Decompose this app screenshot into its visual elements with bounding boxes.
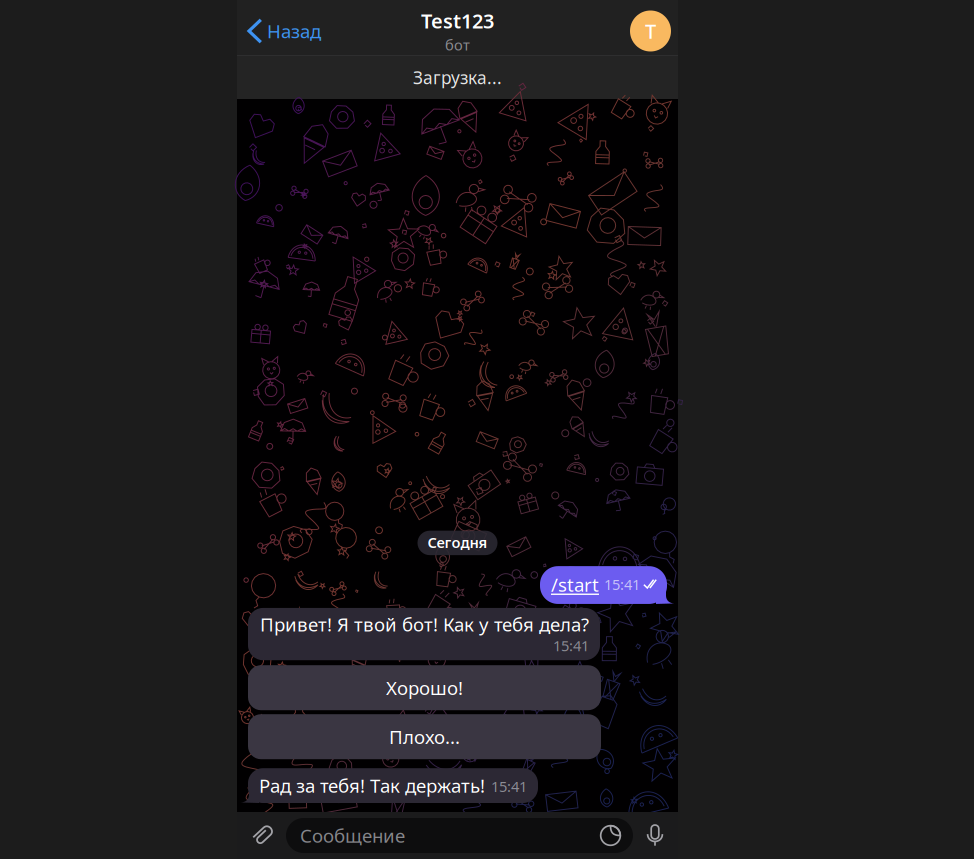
button[interactable]: Attach file: [237, 815, 286, 856]
button[interactable]: Record voice message: [633, 814, 678, 856]
staticText: Test123: [421, 7, 494, 34]
staticText: бот: [445, 35, 470, 54]
button[interactable]: Назад: [237, 6, 321, 50]
staticText: T: [645, 18, 656, 44]
staticText: Назад: [267, 19, 321, 43]
staticText: Плохо...: [389, 724, 460, 749]
staticText: Загрузка...: [413, 66, 502, 89]
staticText: 15:41: [553, 636, 589, 655]
staticText: /start: [551, 572, 599, 597]
button[interactable]: Хорошо!: [248, 665, 601, 710]
button[interactable]: Stickers: [599, 824, 633, 847]
staticText: Хорошо!: [386, 675, 463, 700]
button[interactable]: Плохо...: [248, 714, 601, 759]
staticText: Сегодня: [427, 533, 487, 552]
button[interactable]: Chat profile: [630, 4, 678, 51]
staticText: 15:41: [491, 776, 527, 796]
staticText: Привет! Я твой бот! Как у тебя дела?: [260, 612, 589, 637]
staticText: 15:41: [604, 574, 640, 594]
staticText: Рад за тебя! Так держать!: [259, 773, 485, 798]
staticText: Сообщение: [300, 823, 405, 848]
